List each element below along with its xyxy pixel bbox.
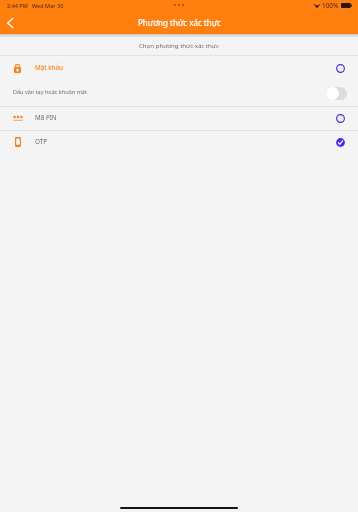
staticText: 100% xyxy=(322,1,339,10)
button[interactable]: OTP xyxy=(0,131,358,154)
staticText: Phương thức xác thực xyxy=(138,17,221,28)
staticText: 2:44 PM Wed Mar 30 xyxy=(7,2,64,9)
staticText: Chọn phương thức xác thực xyxy=(139,41,219,49)
staticText: Mã PIN xyxy=(35,113,57,122)
button[interactable]: Mật khẩu xyxy=(0,56,358,81)
button[interactable]: Back xyxy=(0,13,20,34)
button[interactable]: Mã PIN xyxy=(0,107,358,130)
staticText: Dấu vân tay hoặc khuôn mặt xyxy=(13,88,87,95)
staticText: Mật khẩu xyxy=(35,63,63,72)
staticText: OTP xyxy=(35,137,48,146)
button[interactable]: Dấu vân tay hoặc khuôn mặt xyxy=(0,81,358,106)
